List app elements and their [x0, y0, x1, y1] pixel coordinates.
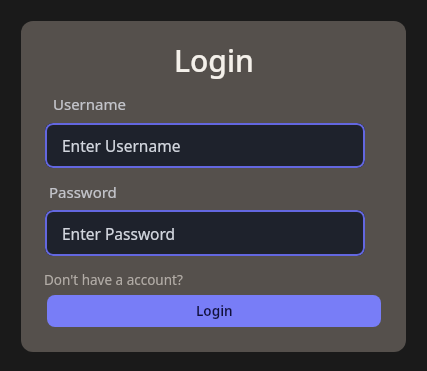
staticText: Login — [174, 40, 254, 81]
staticText: Password — [49, 182, 117, 202]
button[interactable]: Enter Password — [45, 210, 365, 256]
staticText: Login — [196, 302, 233, 320]
staticText: Username — [53, 94, 126, 114]
staticText: Enter Username — [62, 135, 181, 156]
button[interactable]: Enter Username — [45, 123, 365, 168]
staticText: Enter Password — [62, 223, 176, 244]
button[interactable]: Don't have a account? — [44, 271, 183, 289]
staticText: Don't have a account? — [44, 271, 183, 289]
button[interactable]: Login — [47, 295, 381, 327]
